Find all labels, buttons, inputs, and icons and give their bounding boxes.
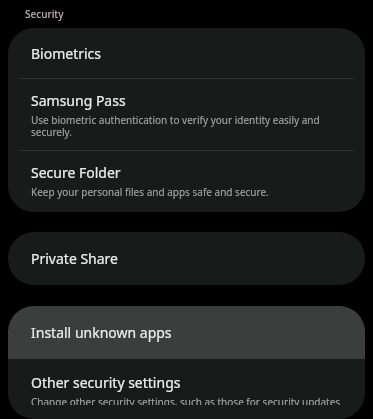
button[interactable]: Biometrics bbox=[8, 28, 365, 78]
staticText: Biometrics bbox=[31, 44, 102, 63]
button[interactable]: Secure Folder bbox=[8, 151, 365, 212]
button[interactable]: Install unknown apps bbox=[8, 306, 365, 359]
staticText: Use biometric authentication to verify y… bbox=[31, 113, 345, 139]
staticText: Install unknown apps bbox=[31, 323, 172, 342]
button[interactable]: Samsung Pass bbox=[8, 79, 365, 150]
staticText: Samsung Pass bbox=[31, 91, 126, 110]
staticText: Keep your personal files and apps safe a… bbox=[31, 185, 269, 199]
staticText: Security bbox=[25, 7, 64, 21]
staticText: Change other security settings, such as … bbox=[31, 395, 345, 405]
staticText: Secure Folder bbox=[31, 163, 121, 182]
staticText: Private Share bbox=[31, 249, 119, 268]
button[interactable]: Other security settings bbox=[8, 359, 365, 419]
button[interactable]: Install unknown apps bbox=[8, 306, 365, 359]
button[interactable]: Private Share bbox=[8, 232, 365, 285]
staticText: Other security settings bbox=[31, 373, 181, 392]
